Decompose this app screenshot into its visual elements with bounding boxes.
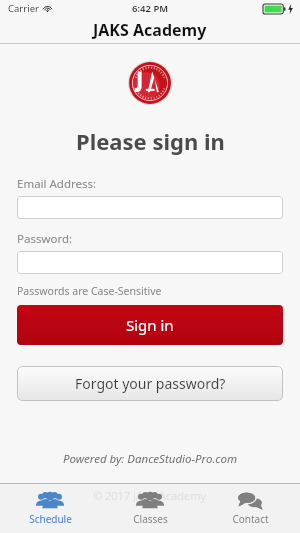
staticText: Email Address:	[17, 176, 97, 192]
button[interactable]	[17, 251, 283, 274]
button[interactable]: Contact	[200, 484, 300, 533]
button[interactable]: Classes	[100, 484, 200, 533]
staticText: Password:	[17, 231, 73, 247]
staticText: Carrier	[8, 2, 39, 15]
button[interactable]: Sign in	[17, 305, 283, 345]
button[interactable]	[17, 196, 283, 219]
button[interactable]: Forgot your password?	[17, 366, 283, 401]
staticText: Powered by: DanceStudio-Pro.com	[63, 451, 238, 467]
staticText: Passwords are Case-Sensitive	[17, 284, 162, 298]
button[interactable]: Schedule	[0, 484, 100, 533]
staticText: 6:42 PM	[132, 2, 169, 15]
staticText: Schedule	[29, 512, 72, 526]
staticText: Sign in	[126, 315, 174, 335]
staticText: Please sign in	[76, 126, 225, 156]
staticText: © 2017 JAKS Academy	[93, 488, 207, 503]
staticText: Forgot your password?	[75, 374, 226, 393]
staticText: Contact	[232, 512, 269, 526]
staticText: Classes	[133, 512, 168, 526]
staticText: JAKS Academy	[93, 19, 207, 41]
